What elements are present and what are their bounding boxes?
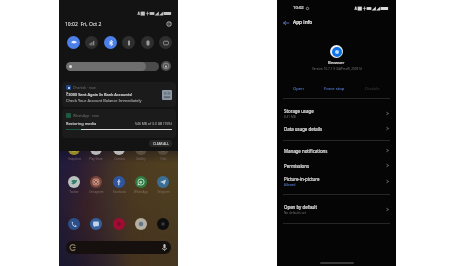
button[interactable]: Bluetooth — [104, 36, 117, 49]
staticText: Facebook — [113, 190, 126, 194]
button[interactable]: Storage usage — [277, 105, 396, 121]
button[interactable]: Open — [289, 84, 308, 93]
button[interactable]: WhatsApp · now — [62, 109, 176, 138]
staticText: 10:02 — [293, 5, 304, 11]
button[interactable]: Manage notifications — [277, 145, 396, 156]
staticText: Permissions — [284, 163, 309, 169]
staticText: Open by default — [284, 204, 318, 210]
staticText: Picture-in-picture — [284, 176, 320, 182]
staticText: CLEAR ALL — [153, 142, 169, 146]
button[interactable]: Chrome — [130, 218, 152, 230]
staticText: Data usage details — [284, 126, 323, 132]
button[interactable]: Picture-in-picture — [277, 173, 396, 189]
staticText: Version 10.7.1.9 (GAPmdf)_200914 — [312, 67, 362, 71]
button[interactable]: Facebook — [108, 176, 130, 194]
staticText: 8.41 MB — [284, 115, 296, 119]
button[interactable]: Settings — [152, 218, 174, 230]
staticText: WhatsApp · now — [73, 113, 99, 118]
button[interactable]: Disable — [361, 84, 384, 93]
staticText: Instagram — [89, 190, 104, 194]
staticText: WhatsApp — [134, 190, 148, 194]
button[interactable]: Data usage details — [277, 123, 396, 134]
button[interactable]: Telegram — [152, 176, 174, 194]
button[interactable]: Search — [66, 241, 171, 254]
button[interactable]: WhatsApp — [130, 176, 152, 194]
button[interactable]: Flashlight — [122, 36, 135, 49]
button[interactable]: CLEAR ALL — [149, 140, 172, 147]
button[interactable]: Brightness — [66, 62, 159, 71]
staticText: Telegram — [157, 190, 170, 194]
button[interactable]: Gallery — [130, 143, 152, 161]
staticText: Allowed — [284, 183, 296, 187]
button[interactable]: Messages — [85, 218, 107, 230]
button[interactable]: Settings — [166, 21, 172, 27]
staticText: ₹3000 Sent Again In Bank Accounts! — [66, 92, 133, 97]
button[interactable]: Twitter — [63, 176, 85, 194]
button[interactable]: Files — [152, 143, 174, 161]
staticText: Files — [160, 157, 167, 161]
button[interactable]: Back — [281, 18, 290, 27]
staticText: Manage notifications — [284, 148, 328, 154]
button[interactable]: Wi-Fi — [67, 36, 80, 49]
button[interactable]: Mobile data — [85, 36, 98, 49]
staticText: Browser — [328, 60, 345, 66]
button[interactable]: Auto brightness — [161, 61, 171, 71]
staticText: Check Your Account Balance Immediately — [66, 98, 142, 103]
button[interactable]: YouTube — [108, 218, 130, 230]
staticText: Play Store — [89, 157, 103, 161]
staticText: Gallery — [136, 157, 146, 161]
staticText: 10:02 Fri, Oct 2 — [65, 21, 102, 28]
staticText: 546 MB of 3.3 GB (15%) — [135, 121, 172, 126]
button[interactable]: Open by default — [277, 201, 396, 217]
staticText: Open — [293, 86, 304, 91]
staticText: No defaults set — [284, 211, 306, 215]
staticText: Dhanlak · now — [73, 85, 96, 90]
button[interactable]: Force stop — [320, 84, 349, 93]
button[interactable]: Screen cast — [159, 36, 172, 49]
staticText: Force stop — [324, 86, 345, 91]
staticText: Twitter — [69, 190, 79, 194]
button[interactable]: Phone — [63, 218, 85, 230]
staticText: Storage usage — [284, 108, 314, 114]
button[interactable]: Dhanlak · now — [62, 82, 176, 107]
button[interactable]: Do not disturb — [141, 36, 154, 49]
staticText: Camera — [114, 157, 125, 161]
button[interactable]: Snapchat — [63, 143, 85, 161]
button[interactable]: Permissions — [277, 160, 396, 171]
button[interactable]: Camera — [108, 143, 130, 161]
staticText: Snapchat — [68, 157, 81, 161]
staticText: Disable — [365, 86, 380, 91]
staticText: App info — [293, 19, 313, 26]
button[interactable]: Play Store — [85, 143, 107, 161]
button[interactable]: Instagram — [85, 176, 107, 194]
staticText: Restoring media — [66, 121, 97, 126]
